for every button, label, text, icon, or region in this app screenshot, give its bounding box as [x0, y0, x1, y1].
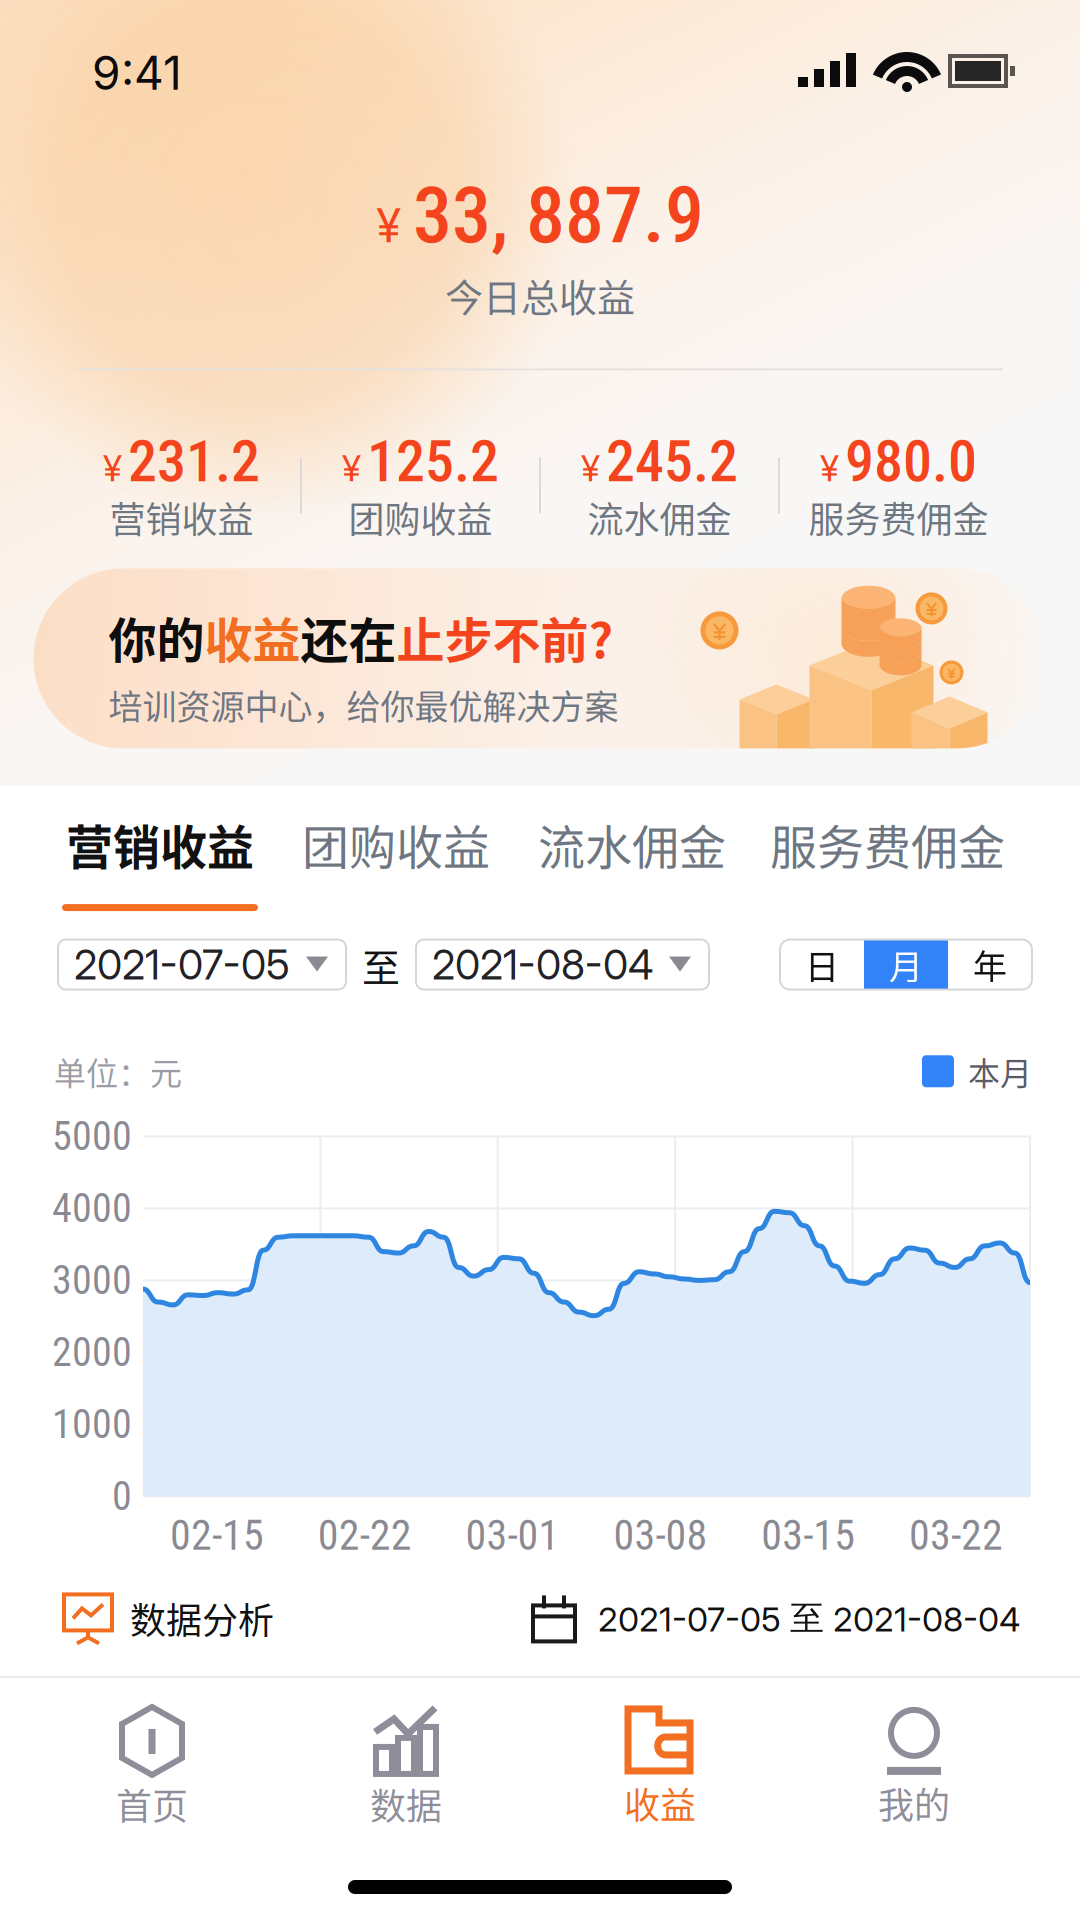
staticText: 团购收益 [348, 491, 492, 543]
staticText: 5000 [52, 1113, 132, 1160]
staticText: 月 [889, 940, 923, 989]
staticText: 流水佣金 [587, 491, 731, 543]
staticText: 今日总收益 [445, 267, 635, 322]
staticText: 服务费佣金 [770, 810, 1005, 878]
staticText: 日 [805, 940, 839, 989]
staticText: 流水佣金 [538, 810, 726, 878]
staticText: ¥ [820, 446, 839, 490]
staticText: 245.2 [606, 427, 738, 495]
button[interactable]: 2021-08-04 [416, 940, 709, 990]
staticText: 营销收益 [66, 810, 254, 878]
staticText: 服务费佣金 [808, 491, 988, 543]
staticText: 止步不前? [396, 602, 613, 672]
staticText: 培训资源中心，给你最优解决方案 [108, 680, 618, 729]
button[interactable]: 流水佣金 [514, 810, 750, 911]
button[interactable]: 首页 [25, 1678, 279, 1854]
staticText: 02-15 [170, 1511, 264, 1560]
staticText: 4000 [52, 1185, 132, 1232]
staticText: 231.2 [128, 427, 260, 495]
staticText: 收益 [204, 602, 300, 672]
staticText: 数据 [370, 1778, 442, 1830]
staticText: 至 [362, 937, 400, 992]
button[interactable]: 2021-07-05 [58, 940, 346, 990]
staticText: 营销收益 [109, 491, 253, 543]
staticText: 团购收益 [302, 810, 490, 878]
staticText: 你的 [108, 602, 204, 672]
button[interactable]: 团购收益 [278, 810, 514, 911]
staticText: 03-08 [613, 1511, 707, 1560]
staticText: 3000 [52, 1257, 132, 1304]
staticText: 年 [973, 940, 1007, 989]
staticText: 数据分析 [130, 1592, 274, 1644]
button[interactable]: 营销收益 [42, 810, 278, 911]
staticText: ¥ [581, 446, 600, 490]
button[interactable]: 你的 [33, 568, 1046, 748]
staticText: 2021-07-05 [74, 940, 290, 989]
staticText: 125.2 [367, 427, 499, 495]
staticText: 2021-07-05 至 2021-08-04 [598, 1597, 1020, 1640]
staticText: 33, 887.9 [413, 170, 704, 261]
button[interactable]: 日 [780, 940, 864, 990]
button[interactable]: 收益 [533, 1678, 787, 1854]
staticText: ¥ [103, 446, 122, 490]
staticText: 03-22 [909, 1511, 1003, 1560]
button[interactable]: 2021-07-05 至 2021-08-04 [530, 1591, 1020, 1645]
staticText: 2021-08-04 [432, 940, 653, 989]
staticText: 02-22 [318, 1511, 412, 1560]
staticText: 0 [112, 1473, 132, 1520]
staticText: 1000 [52, 1401, 132, 1448]
button[interactable]: 月 [864, 940, 948, 990]
staticText: 980.0 [845, 427, 977, 495]
staticText: 首页 [116, 1778, 188, 1830]
staticText: 单位：元 [54, 1048, 182, 1094]
button[interactable]: 服务费佣金 [750, 810, 1025, 911]
staticText: 9:41 [92, 45, 182, 101]
staticText: 收益 [624, 1777, 696, 1829]
button[interactable]: 数据分析 [62, 1590, 274, 1646]
staticText: ¥ [342, 446, 361, 490]
staticText: 还在 [300, 602, 396, 672]
button[interactable]: 数据 [279, 1678, 533, 1854]
button[interactable]: 我的 [787, 1678, 1041, 1854]
staticText: 03-15 [761, 1511, 855, 1560]
staticText: 本月 [968, 1048, 1032, 1094]
staticText: 我的 [878, 1777, 950, 1829]
staticText: 2000 [52, 1329, 132, 1376]
staticText: ¥ [376, 198, 401, 253]
button[interactable]: 年 [948, 940, 1032, 990]
staticText: 03-01 [466, 1511, 560, 1560]
